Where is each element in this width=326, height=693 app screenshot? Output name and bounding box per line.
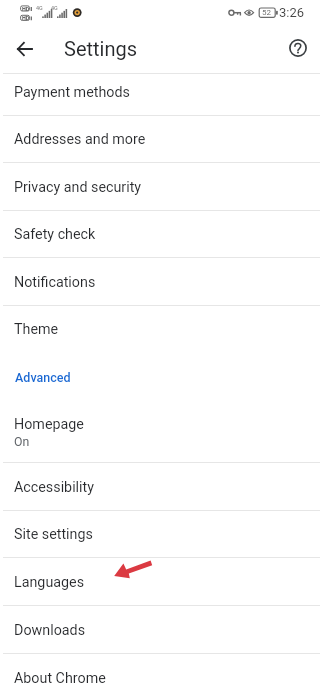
- staticText: Settings: [64, 37, 138, 60]
- staticText: Languages: [14, 574, 85, 591]
- button[interactable]: Languages: [0, 558, 326, 606]
- staticText: 3:26: [279, 5, 305, 20]
- staticText: Payment methods: [14, 84, 130, 101]
- staticText: Homepage: [14, 416, 84, 433]
- button[interactable]: Privacy and security: [0, 163, 326, 211]
- staticText: About Chrome: [14, 670, 106, 687]
- button[interactable]: Homepage: [0, 402, 326, 463]
- staticText: Advanced: [15, 370, 71, 385]
- button[interactable]: Safety check: [0, 210, 326, 258]
- staticText: Downloads: [14, 622, 86, 639]
- staticText: HD: [22, 6, 30, 12]
- staticText: 52: [262, 8, 271, 17]
- button[interactable]: Payment methods: [0, 68, 326, 116]
- staticText: Safety check: [14, 226, 96, 243]
- staticText: Addresses and more: [14, 131, 146, 148]
- staticText: 4G: [36, 5, 43, 11]
- button[interactable]: Notifications: [0, 258, 326, 306]
- staticText: Accessibility: [14, 479, 95, 496]
- button[interactable]: Accessibility: [0, 463, 326, 511]
- button[interactable]: Theme: [0, 305, 326, 353]
- button[interactable]: About Chrome: [0, 654, 326, 693]
- staticText: On: [14, 435, 30, 449]
- staticText: Privacy and security: [14, 179, 142, 196]
- staticText: Theme: [14, 321, 59, 338]
- staticText: HD: [22, 15, 30, 21]
- button[interactable]: Help: [284, 34, 312, 62]
- button[interactable]: Back: [9, 34, 39, 64]
- staticText: 4G: [51, 5, 58, 11]
- staticText: Notifications: [14, 274, 96, 291]
- button[interactable]: Site settings: [0, 510, 326, 558]
- button[interactable]: Addresses and more: [0, 115, 326, 163]
- staticText: Site settings: [14, 526, 93, 543]
- button[interactable]: Downloads: [0, 606, 326, 654]
